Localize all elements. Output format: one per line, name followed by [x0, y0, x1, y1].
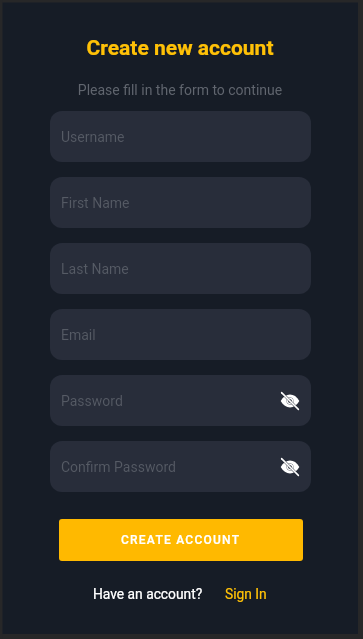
staticText: Last Name [61, 261, 129, 277]
button[interactable]: Password [50, 375, 311, 426]
button[interactable]: Username [50, 111, 311, 162]
button[interactable]: Show password [275, 452, 305, 482]
button[interactable]: Show password [275, 386, 305, 416]
staticText: Create new account [0, 36, 360, 61]
staticText: Please fill in the form to continue [0, 82, 360, 98]
button[interactable]: Sign In [225, 586, 267, 602]
staticText: First Name [61, 195, 130, 211]
staticText: Password [61, 393, 123, 409]
button[interactable]: Email [50, 309, 311, 360]
staticText: CREATE ACCOUNT [121, 533, 241, 547]
staticText: Have an account? [93, 586, 203, 602]
staticText: Username [61, 129, 125, 145]
staticText: Email [61, 327, 96, 343]
button[interactable]: Confirm Password [50, 441, 311, 492]
button[interactable]: CREATE ACCOUNT [59, 519, 303, 561]
staticText: Sign In [225, 586, 267, 602]
button[interactable]: Last Name [50, 243, 311, 294]
staticText: Confirm Password [61, 459, 176, 475]
button[interactable]: First Name [50, 177, 311, 228]
